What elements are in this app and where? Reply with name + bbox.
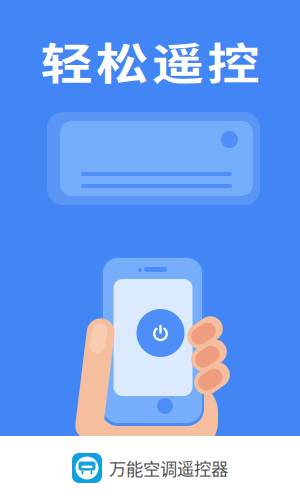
staticText: 轻 松 遥 控	[49, 26, 250, 96]
staticText: 万能空调遥控器	[109, 455, 228, 481]
button[interactable]: 万能空调遥控器	[0, 436, 300, 500]
